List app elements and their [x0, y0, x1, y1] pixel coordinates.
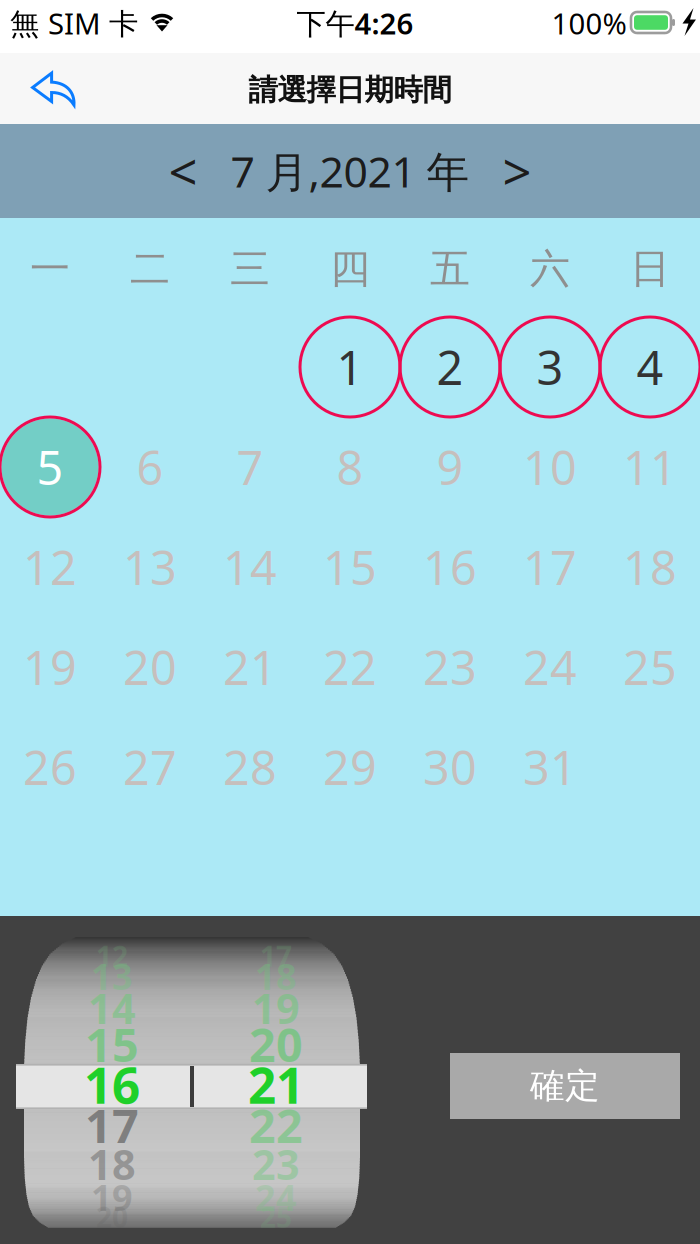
button[interactable]: 30: [400, 717, 500, 817]
staticText: 18: [88, 1137, 136, 1191]
staticText: 23: [423, 636, 477, 698]
staticText: 29: [323, 736, 377, 798]
staticText: 17: [523, 536, 577, 598]
staticText: 14: [88, 981, 136, 1035]
button[interactable]: 5: [0, 417, 100, 517]
button[interactable]: 17: [500, 517, 600, 617]
staticText: 15: [85, 1013, 139, 1075]
staticText: 18: [255, 952, 297, 1000]
button[interactable]: 24: [500, 617, 600, 717]
staticText: 21: [223, 636, 277, 698]
staticText: 25: [623, 636, 677, 698]
staticText: 五: [430, 244, 470, 293]
staticText: 15: [323, 536, 377, 598]
button[interactable]: Back: [13, 53, 93, 124]
staticText: >: [502, 137, 531, 205]
staticText: 20: [249, 1013, 303, 1075]
staticText: 13: [123, 536, 177, 598]
staticText: 2: [436, 336, 463, 398]
staticText: 13: [91, 952, 133, 1000]
staticText: 18: [623, 536, 677, 598]
button[interactable]: 22: [300, 617, 400, 717]
staticText: <: [168, 137, 197, 205]
button[interactable]: 21: [200, 617, 300, 717]
staticText: 12: [23, 536, 77, 598]
staticText: 8: [336, 436, 363, 498]
staticText: 無 SIM 卡: [10, 3, 138, 42]
staticText: 25: [260, 1198, 292, 1236]
staticText: 16: [84, 1052, 140, 1117]
staticText: 19: [252, 981, 300, 1035]
staticText: 六: [530, 244, 570, 293]
staticText: 9: [436, 436, 463, 498]
button[interactable]: 29: [300, 717, 400, 817]
button[interactable]: 8: [300, 417, 400, 517]
staticText: 31: [523, 736, 577, 798]
staticText: 一: [30, 244, 70, 293]
staticText: 日: [630, 244, 670, 293]
staticText: 28: [223, 736, 277, 798]
staticText: 確定: [530, 1065, 600, 1107]
button[interactable]: 4: [600, 317, 700, 417]
button[interactable]: 20: [100, 617, 200, 717]
staticText: 請選擇日期時間: [248, 72, 451, 108]
button[interactable]: 2: [400, 317, 500, 417]
staticText: 14: [223, 536, 277, 598]
staticText: 7 月,2021 年: [230, 143, 469, 199]
button[interactable]: 28: [200, 717, 300, 817]
staticText: 20: [96, 1198, 128, 1236]
staticText: 17: [260, 937, 292, 975]
staticText: 22: [249, 1094, 303, 1156]
staticText: 11: [623, 436, 677, 498]
staticText: 21: [248, 1052, 304, 1117]
staticText: 5: [36, 436, 63, 498]
staticText: 100%: [551, 3, 626, 42]
staticText: 16: [423, 536, 477, 598]
staticText: 27: [123, 736, 177, 798]
button[interactable]: 12: [0, 517, 100, 617]
staticText: 1: [336, 336, 363, 398]
button[interactable]: 16: [400, 517, 500, 617]
button[interactable]: 6: [100, 417, 200, 517]
staticText: 19: [91, 1173, 133, 1221]
button[interactable]: 26: [0, 717, 100, 817]
staticText: 26: [23, 736, 77, 798]
staticText: 20: [123, 636, 177, 698]
button[interactable]: 25: [600, 617, 700, 717]
staticText: 三: [230, 244, 270, 293]
button[interactable]: 31: [500, 717, 600, 817]
staticText: 23: [252, 1137, 300, 1191]
staticText: 四: [330, 244, 370, 293]
staticText: 4: [636, 336, 663, 398]
staticText: 3: [536, 336, 563, 398]
button[interactable]: 18: [600, 517, 700, 617]
button[interactable]: 7: [200, 417, 300, 517]
button[interactable]: 15: [300, 517, 400, 617]
button[interactable]: 9: [400, 417, 500, 517]
staticText: 12: [96, 937, 128, 975]
button[interactable]: 27: [100, 717, 200, 817]
staticText: 7: [236, 436, 263, 498]
staticText: 24: [523, 636, 577, 698]
staticText: 24: [255, 1173, 297, 1221]
button[interactable]: 3: [500, 317, 600, 417]
button[interactable]: 確定: [450, 1053, 680, 1119]
button[interactable]: 23: [400, 617, 500, 717]
staticText: 10: [523, 436, 577, 498]
button[interactable]: 1: [300, 317, 400, 417]
staticText: 二: [130, 244, 170, 293]
staticText: 6: [136, 436, 163, 498]
button[interactable]: 14: [200, 517, 300, 617]
button[interactable]: Next month: [494, 140, 540, 202]
staticText: 22: [323, 636, 377, 698]
staticText: 17: [85, 1094, 139, 1156]
staticText: 19: [23, 636, 77, 698]
staticText: 30: [423, 736, 477, 798]
staticText: 下午4:26: [296, 3, 413, 42]
button[interactable]: 13: [100, 517, 200, 617]
button[interactable]: Previous month: [160, 140, 206, 202]
button[interactable]: 19: [0, 617, 100, 717]
button[interactable]: 10: [500, 417, 600, 517]
button[interactable]: 11: [600, 417, 700, 517]
